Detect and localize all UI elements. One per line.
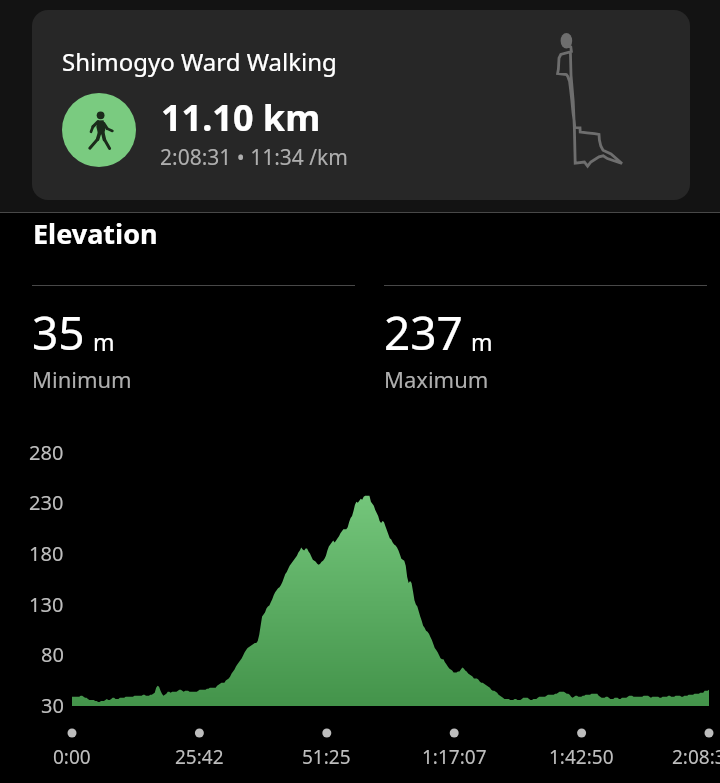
staticText: 1:42:50: [549, 744, 614, 770]
staticText: 230: [29, 489, 64, 516]
staticText: 280: [29, 439, 64, 466]
staticText: Shimogyo Ward Walking: [62, 45, 337, 78]
staticText: 80: [41, 641, 64, 668]
staticText: Minimum: [32, 364, 132, 394]
staticText: 2:08:31 • 11:34 /km: [160, 143, 348, 172]
staticText: 25:42: [175, 744, 224, 770]
button[interactable]: 237: [384, 286, 707, 390]
button[interactable]: 35: [32, 286, 355, 390]
staticText: 30: [41, 692, 64, 719]
staticText: 0:00: [53, 744, 91, 770]
button[interactable]: Shimogyo Ward Walking: [32, 10, 690, 200]
staticText: 35: [32, 301, 85, 364]
staticText: m: [93, 326, 115, 357]
staticText: m: [471, 326, 493, 357]
staticText: 130: [29, 591, 64, 618]
staticText: 11.10 km: [161, 93, 321, 142]
staticText: 237: [384, 301, 463, 364]
button[interactable]: Open route map: [548, 24, 642, 182]
staticText: 1:17:07: [422, 744, 487, 770]
staticText: Maximum: [384, 364, 489, 394]
staticText: 180: [29, 540, 64, 567]
staticText: 2:08:31: [672, 744, 720, 770]
staticText: Elevation: [33, 215, 158, 252]
staticText: 51:25: [302, 744, 351, 770]
